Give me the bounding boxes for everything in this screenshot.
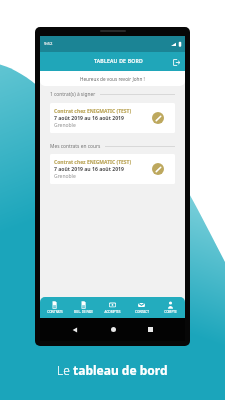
staticText: ACOMPTES	[104, 310, 121, 314]
staticText: tableau de bord	[73, 362, 168, 378]
button[interactable]: Contrat chez ENIGMATIC (TEST)	[50, 103, 175, 133]
staticText: Contrat chez ENIGMATIC (TEST)	[54, 159, 132, 166]
staticText: 1 contrat(s) à signer	[50, 91, 96, 98]
button[interactable]: ACOMPTES	[98, 297, 127, 318]
button[interactable]: BUL. DE PAIE	[69, 297, 98, 318]
staticText: Contrat chez ENIGMATIC (TEST)	[54, 108, 132, 115]
staticText: CONTACT	[135, 310, 149, 314]
button[interactable]: Contrat chez ENIGMATIC (TEST)	[50, 154, 175, 184]
button[interactable]: CONTRATS	[40, 297, 69, 318]
button[interactable]: COMPTE	[156, 297, 185, 318]
staticText: COMPTE	[164, 310, 177, 314]
staticText: TABLEAU DE BORD	[94, 58, 144, 65]
staticText: CONTRATS	[47, 310, 63, 314]
staticText: 7 août 2019 au 16 août 2019	[54, 166, 124, 173]
button[interactable]: Déconnexion	[171, 57, 181, 67]
staticText: BUL. DE PAIE	[74, 310, 93, 314]
button[interactable]: Signer le contrat	[152, 163, 164, 175]
staticText: 9:52	[44, 41, 53, 47]
staticText: 7 août 2019 au 16 août 2019	[54, 115, 124, 122]
staticText: Heureux de vous revoir John !	[80, 76, 145, 82]
button[interactable]: Signer le contrat	[152, 112, 164, 124]
staticText: Grenoble	[54, 173, 76, 180]
button[interactable]: CONTACT	[127, 297, 156, 318]
staticText: Le	[57, 362, 73, 378]
staticText: Mes contrats en cours	[50, 143, 101, 150]
staticText: Grenoble	[54, 122, 76, 129]
